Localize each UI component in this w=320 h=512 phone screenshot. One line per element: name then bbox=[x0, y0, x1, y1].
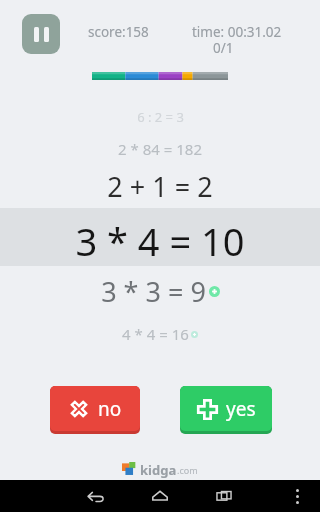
button[interactable]: Pause bbox=[22, 14, 60, 54]
staticText: no bbox=[98, 396, 122, 422]
staticText: 6 : 2 = 3 bbox=[137, 108, 184, 126]
button[interactable]: no bbox=[50, 386, 140, 434]
button[interactable]: yes bbox=[180, 386, 272, 434]
button[interactable]: More options bbox=[282, 480, 312, 512]
staticText: 3 * 4 = 10 bbox=[75, 215, 245, 267]
staticText: .com bbox=[177, 464, 198, 476]
staticText: yes bbox=[226, 396, 256, 422]
button[interactable]: Back bbox=[74, 480, 118, 512]
staticText: 2 + 1 = 2 bbox=[107, 168, 213, 205]
button[interactable]: Recent apps bbox=[202, 480, 246, 512]
staticText: time: 00:31.02 bbox=[192, 23, 282, 41]
staticText: 4 * 4 = 16 bbox=[122, 324, 189, 344]
staticText: 0/1 bbox=[213, 39, 234, 57]
staticText: 2 * 84 = 182 bbox=[118, 139, 202, 159]
staticText: kidga bbox=[140, 461, 177, 479]
staticText: score:158 bbox=[88, 23, 149, 41]
staticText: 3 * 3 = 9 bbox=[101, 273, 206, 310]
button[interactable]: Home bbox=[138, 480, 182, 512]
